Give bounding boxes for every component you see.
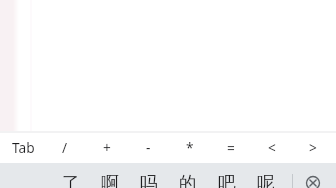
button[interactable]: 呢 (246, 163, 285, 188)
button[interactable]: = (210, 132, 251, 162)
staticText: 吗 (140, 172, 158, 188)
staticText: Tab (12, 138, 35, 157)
staticText: 的 (179, 172, 197, 188)
staticText: * (186, 138, 194, 157)
staticText: < (268, 138, 276, 157)
staticText: 啊 (101, 172, 119, 188)
button[interactable]: 了 (51, 163, 90, 188)
button[interactable]: 啊 (90, 163, 129, 188)
staticText: / (62, 138, 68, 157)
button[interactable]: Tab (2, 132, 44, 162)
button[interactable]: < (251, 132, 292, 162)
button[interactable]: 吧 (207, 163, 246, 188)
staticText: 吧 (218, 172, 236, 188)
button[interactable]: 的 (168, 163, 207, 188)
staticText: 呢 (257, 172, 275, 188)
staticText: + (103, 138, 111, 157)
staticText: = (227, 138, 235, 157)
button[interactable]: / (44, 132, 86, 162)
button[interactable]: 吗 (129, 163, 168, 188)
staticText: - (146, 138, 151, 157)
button[interactable]: + (86, 132, 128, 162)
staticText: > (309, 138, 317, 157)
button[interactable]: * (169, 132, 210, 162)
button[interactable]: - (128, 132, 169, 162)
staticText: 了 (62, 172, 80, 188)
button[interactable]: Close candidates (301, 171, 325, 188)
button[interactable]: > (292, 132, 333, 162)
